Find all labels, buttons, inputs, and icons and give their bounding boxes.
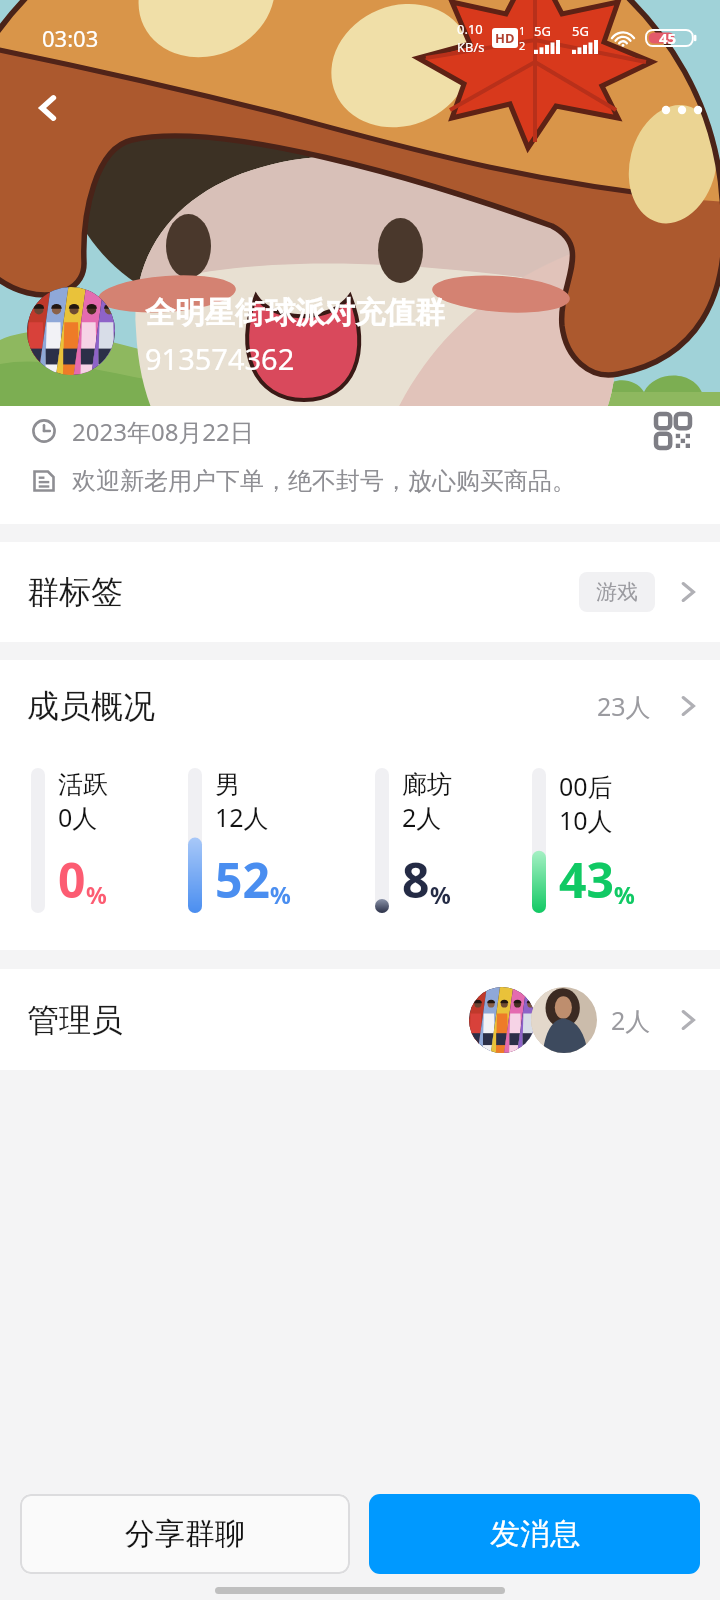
button[interactable]: QR code — [646, 406, 700, 456]
staticText: % — [270, 879, 291, 910]
staticText: 全明星街球派对充值群 — [145, 294, 445, 332]
staticText: KB/s — [457, 38, 485, 56]
staticText: 03:03 — [42, 23, 99, 53]
staticText: 游戏 — [596, 579, 638, 605]
staticText: 活跃 — [58, 769, 108, 800]
staticText: 发消息 — [490, 1515, 580, 1553]
staticText: 5G — [572, 22, 589, 40]
staticText: 43 — [559, 847, 614, 912]
button[interactable]: More options — [654, 82, 710, 138]
staticText: 0.10 — [457, 20, 483, 38]
staticText: 00后 — [559, 769, 613, 803]
staticText: 廊坊 — [402, 769, 452, 800]
staticText: 23人 — [597, 689, 651, 723]
button[interactable]: 群标签 — [0, 542, 720, 642]
staticText: 12人 — [215, 800, 269, 834]
button[interactable]: 分享群聊 — [20, 1494, 350, 1574]
staticText: 2023年08月22日 — [72, 415, 254, 448]
staticText: 2 — [519, 38, 526, 53]
staticText: 1 — [519, 23, 526, 38]
button[interactable]: 管理员 — [0, 969, 720, 1070]
staticText: 5G — [534, 22, 551, 40]
button[interactable] — [27, 287, 115, 375]
staticText: HD — [495, 29, 515, 47]
staticText: % — [430, 879, 451, 910]
staticText: % — [614, 879, 635, 910]
button[interactable]: 发消息 — [369, 1494, 700, 1574]
staticText: % — [86, 879, 107, 910]
staticText: 成员概况 — [27, 686, 155, 726]
staticText: 分享群聊 — [125, 1515, 245, 1553]
staticText: 0 — [58, 847, 86, 912]
staticText: 管理员 — [27, 1000, 123, 1040]
staticText: 群标签 — [27, 572, 123, 612]
button[interactable]: Back — [18, 78, 78, 138]
staticText: 0人 — [58, 800, 98, 834]
staticText: 男 — [215, 769, 240, 800]
staticText: 52 — [215, 847, 270, 912]
staticText: 913574362 — [145, 339, 295, 378]
staticText: 8 — [402, 847, 430, 912]
staticText: 10人 — [559, 803, 613, 837]
staticText: 2人 — [611, 1003, 651, 1037]
staticText: 2人 — [402, 800, 442, 834]
button[interactable]: 成员概况 — [0, 660, 720, 752]
staticText: 欢迎新老用户下单，绝不封号，放心购买商品。 — [72, 466, 576, 496]
staticText: 45 — [659, 28, 677, 48]
